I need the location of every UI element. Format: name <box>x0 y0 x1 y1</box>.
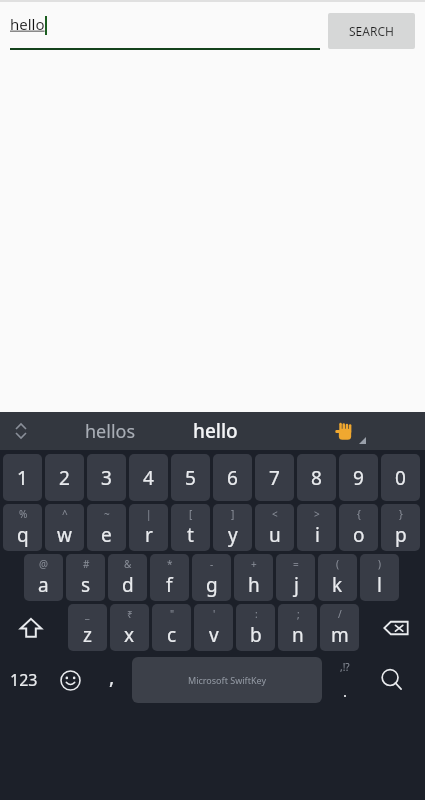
staticText: j <box>294 572 299 598</box>
button[interactable]: 1 <box>3 454 42 501</box>
button[interactable]: Shift <box>3 604 58 651</box>
button[interactable]: hello <box>160 412 270 450</box>
button[interactable]: - <box>192 554 231 601</box>
button[interactable]: Emoji <box>48 654 92 706</box>
staticText: b <box>250 622 262 648</box>
staticText: * <box>167 557 173 571</box>
button[interactable]: % <box>3 504 42 551</box>
staticText: 4 <box>143 465 154 491</box>
button[interactable]: ₹ <box>110 604 149 651</box>
staticText: < <box>272 507 278 521</box>
staticText: h <box>248 572 260 598</box>
button[interactable]: { <box>339 504 378 551</box>
button[interactable]: < <box>255 504 294 551</box>
staticText: + <box>251 557 257 571</box>
staticText: 6 <box>227 465 238 491</box>
button[interactable]: | <box>129 504 168 551</box>
button[interactable]: / <box>320 604 359 651</box>
staticText: ,!? <box>340 660 350 674</box>
staticText: , <box>109 663 115 690</box>
staticText: # <box>83 557 90 571</box>
button[interactable]: } <box>381 504 420 551</box>
staticText: g <box>206 572 218 598</box>
button[interactable]: 7 <box>255 454 294 501</box>
button[interactable]: ( <box>318 554 357 601</box>
button[interactable]: ^ <box>45 504 84 551</box>
button[interactable]: Expand suggestions <box>13 423 29 439</box>
staticText: SEARCH <box>349 23 394 39</box>
button[interactable]: + <box>234 554 273 601</box>
staticText: w <box>57 522 72 548</box>
staticText: = <box>293 557 299 571</box>
button[interactable]: > <box>297 504 336 551</box>
staticText: hello <box>193 418 238 444</box>
button[interactable]: Search <box>367 654 417 706</box>
button[interactable]: ] <box>213 504 252 551</box>
button[interactable]: _ <box>68 604 107 651</box>
button[interactable]: 123 <box>0 654 48 706</box>
button[interactable]: SEARCH <box>328 13 415 49</box>
button[interactable]: 8 <box>297 454 336 501</box>
button[interactable]: ) <box>360 554 399 601</box>
staticText: % <box>19 507 28 521</box>
staticText: hellos <box>85 419 136 444</box>
staticText: c <box>167 622 177 648</box>
button[interactable]: , <box>92 654 132 706</box>
button[interactable]: : <box>236 604 275 651</box>
button[interactable]: ; <box>278 604 317 651</box>
button[interactable]: 4 <box>129 454 168 501</box>
button[interactable]: hellos <box>40 412 180 450</box>
staticText: [ <box>189 507 193 521</box>
button[interactable]: 2 <box>45 454 84 501</box>
button[interactable]: & <box>108 554 147 601</box>
button[interactable]: 6 <box>213 454 252 501</box>
staticText: e <box>101 522 112 548</box>
staticText: n <box>292 622 304 648</box>
staticText: hello <box>10 14 45 34</box>
staticText: & <box>124 557 132 571</box>
staticText: 9 <box>353 465 364 491</box>
staticText: 0 <box>395 465 406 491</box>
staticText: a <box>38 572 49 598</box>
staticText: ; <box>297 607 300 621</box>
button[interactable]: ~ <box>87 504 126 551</box>
button[interactable]: * <box>150 554 189 601</box>
button[interactable]: hello <box>10 10 320 50</box>
staticText: 1 <box>17 465 28 491</box>
button[interactable]: 9 <box>339 454 378 501</box>
staticText: p <box>395 522 407 548</box>
button[interactable]: Microsoft SwiftKey <box>132 657 322 703</box>
staticText: ^ <box>62 507 68 521</box>
staticText: _ <box>85 607 90 621</box>
staticText: 3 <box>101 465 112 491</box>
staticText: | <box>146 507 152 521</box>
button[interactable]: 5 <box>171 454 210 501</box>
staticText: s <box>81 572 91 598</box>
button[interactable]: ,!? <box>322 654 367 706</box>
staticText: - <box>210 557 214 571</box>
button[interactable]: @ <box>24 554 63 601</box>
button[interactable]: 0 <box>381 454 420 501</box>
staticText: @ <box>39 557 48 571</box>
staticText: ' <box>213 607 216 621</box>
button[interactable]: = <box>276 554 315 601</box>
button[interactable]: 3 <box>87 454 126 501</box>
button[interactable]: Backspace <box>369 604 422 651</box>
button[interactable]: ' <box>194 604 233 651</box>
staticText: 123 <box>10 669 38 691</box>
staticText: f <box>166 572 173 598</box>
staticText: r <box>145 522 153 548</box>
staticText: ] <box>231 507 235 521</box>
staticText: k <box>332 572 343 598</box>
button[interactable]: [ <box>171 504 210 551</box>
staticText: ~ <box>104 507 110 521</box>
button[interactable]: # <box>66 554 105 601</box>
button[interactable]: " <box>152 604 191 651</box>
button[interactable]: Emoji suggestion <box>320 412 370 450</box>
staticText: t <box>187 522 194 548</box>
staticText: o <box>353 522 365 548</box>
staticText: : <box>255 607 258 621</box>
staticText: Microsoft SwiftKey <box>188 674 266 686</box>
staticText: d <box>122 572 134 598</box>
staticText: q <box>17 522 29 548</box>
